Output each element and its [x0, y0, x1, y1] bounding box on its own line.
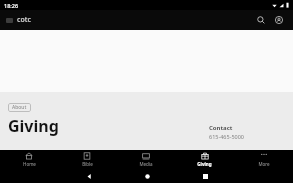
button[interactable]: Giving	[175, 150, 234, 170]
staticText: Giving	[197, 161, 212, 167]
staticText: Home	[23, 161, 36, 167]
staticText: About	[12, 104, 27, 111]
staticText: 18:26	[4, 2, 19, 9]
button[interactable]: Recent apps	[191, 170, 219, 183]
button[interactable]: Media	[116, 150, 175, 170]
staticText: Giving	[8, 115, 59, 137]
staticText: Contact	[209, 124, 233, 132]
button[interactable]: Back	[75, 170, 103, 183]
other: Church logo	[6, 18, 13, 23]
button[interactable]: About	[8, 103, 31, 112]
staticText: Media	[139, 161, 153, 167]
staticText: cotc	[17, 15, 31, 25]
button[interactable]: More	[234, 150, 293, 170]
button[interactable]: Search	[253, 12, 269, 28]
staticText: Bible	[82, 161, 93, 167]
button[interactable]: Bible	[58, 150, 116, 170]
button[interactable]: Home	[133, 170, 161, 183]
button[interactable]: Account	[271, 12, 287, 28]
button[interactable]: Home	[0, 150, 58, 170]
staticText: More	[258, 161, 270, 167]
button[interactable]: 615-465-5000	[209, 133, 245, 140]
